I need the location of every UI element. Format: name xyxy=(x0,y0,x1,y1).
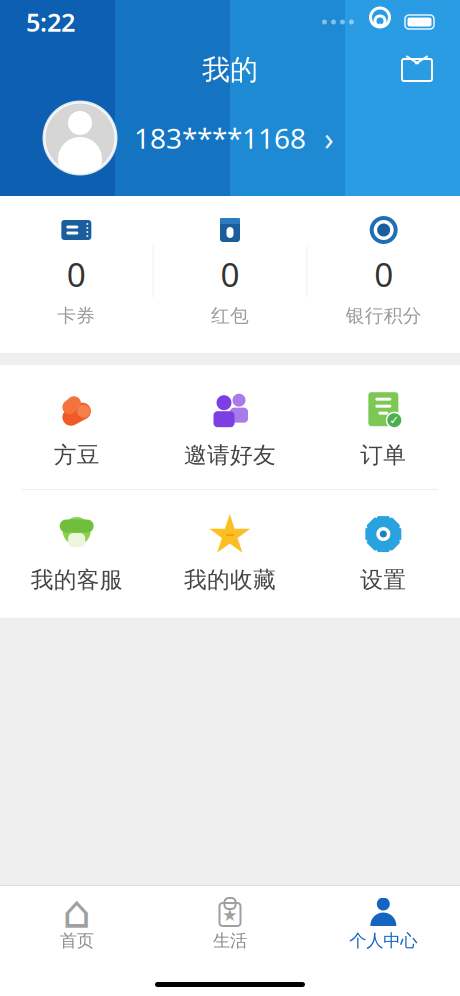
button[interactable]: 我的客服 xyxy=(0,502,153,604)
button[interactable]: 设置 xyxy=(307,502,460,604)
staticText: ⌂ xyxy=(62,886,91,938)
staticText: 订单 xyxy=(360,441,406,469)
button[interactable]: 0 xyxy=(154,212,306,331)
staticText: 个人中心 xyxy=(349,930,417,951)
button[interactable]: 0 xyxy=(0,212,153,331)
staticText: ★ xyxy=(206,504,254,564)
staticText: 银行积分 xyxy=(346,304,422,327)
button[interactable]: 0 xyxy=(307,212,460,331)
staticText: › xyxy=(324,117,334,159)
staticText: 我的 xyxy=(202,53,258,87)
staticText: 5:22 xyxy=(26,5,75,39)
button[interactable]: 邀请好友 xyxy=(153,377,307,479)
button[interactable]: 183****1168 xyxy=(0,96,460,196)
staticText: 0 xyxy=(67,252,86,296)
staticText: 设置 xyxy=(360,566,406,594)
staticText: ★ xyxy=(222,905,238,925)
button[interactable]: ★ xyxy=(153,502,307,604)
staticText: 邀请好友 xyxy=(184,441,276,469)
staticText: 首页 xyxy=(60,930,94,951)
staticText: 我的客服 xyxy=(31,566,123,594)
button[interactable]: Messages xyxy=(390,49,444,91)
staticText: 我的收藏 xyxy=(184,566,276,594)
staticText: 卡券 xyxy=(57,304,95,327)
staticText: 红包 xyxy=(211,304,249,327)
button[interactable]: ⌂ xyxy=(0,890,153,957)
button[interactable]: 方豆 xyxy=(0,377,153,479)
staticText: 0 xyxy=(220,252,239,296)
button[interactable]: 个人中心 xyxy=(307,890,460,957)
button[interactable]: ✓ xyxy=(307,377,460,479)
staticText: 方豆 xyxy=(54,441,100,469)
staticText: 183****1168 xyxy=(134,119,306,157)
button[interactable]: ★ xyxy=(153,890,307,957)
staticText: 0 xyxy=(374,252,393,296)
staticText: 生活 xyxy=(213,930,247,951)
staticText: ✓ xyxy=(389,413,399,427)
